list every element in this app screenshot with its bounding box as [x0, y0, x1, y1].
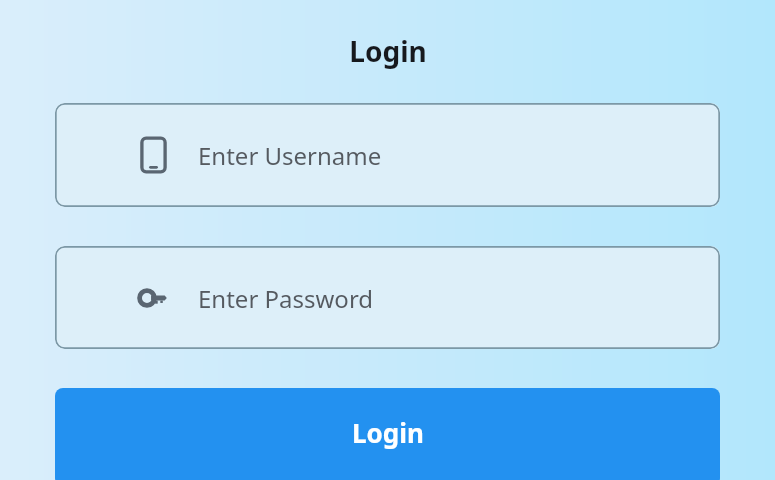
button[interactable]: Password	[55, 246, 720, 349]
staticText: Enter Username	[198, 139, 382, 172]
staticText: Login	[349, 32, 427, 70]
button[interactable]: Username	[55, 103, 720, 207]
staticText: Login	[352, 415, 424, 450]
button[interactable]: Login	[55, 388, 720, 480]
staticText: Enter Password	[198, 282, 374, 315]
other: Username	[139, 134, 168, 176]
other: Password	[139, 277, 168, 319]
